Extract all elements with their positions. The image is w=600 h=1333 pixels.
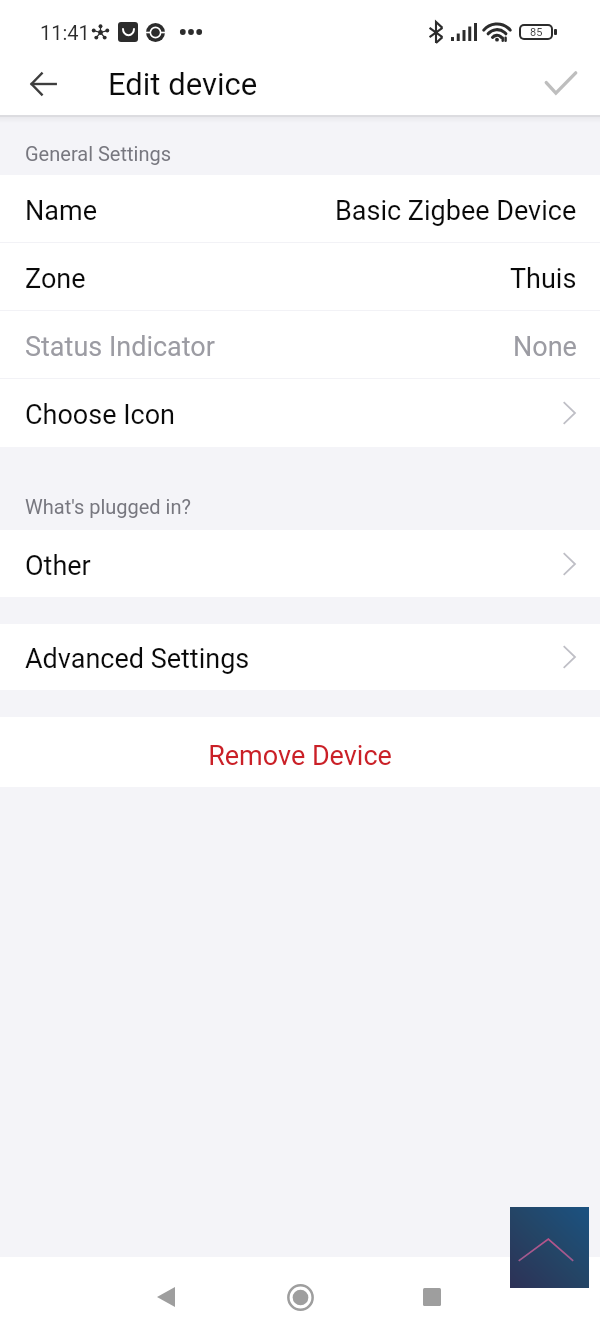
staticText: Remove Device: [208, 740, 392, 772]
staticText: What's plugged in?: [25, 495, 191, 518]
staticText: None: [513, 331, 577, 363]
staticText: 85: [530, 26, 543, 38]
button[interactable]: Other: [0, 530, 600, 597]
staticText: Other: [25, 550, 91, 582]
staticText: Status Indicator: [25, 331, 215, 363]
button[interactable]: Status Indicator: [0, 311, 600, 379]
staticText: Zone: [25, 263, 86, 295]
staticText: Edit device: [108, 66, 258, 102]
button[interactable]: Choose Icon: [0, 379, 600, 447]
staticText: Thuis: [510, 263, 577, 295]
staticText: 11:41: [40, 21, 90, 44]
button[interactable]: Remove Device: [0, 717, 600, 787]
button[interactable]: Recents: [382, 1257, 482, 1333]
button[interactable]: Back: [116, 1257, 216, 1333]
button[interactable]: Zone: [0, 243, 600, 311]
staticText: Name: [25, 195, 97, 227]
button[interactable]: Back: [0, 55, 86, 117]
button[interactable]: Save: [521, 55, 600, 117]
button[interactable]: Name: [0, 175, 600, 243]
button[interactable]: Advanced Settings: [0, 624, 600, 690]
button[interactable]: Open floating app: [510, 1207, 589, 1288]
staticText: Basic Zigbee Device: [335, 195, 577, 227]
staticText: General Settings: [25, 142, 171, 165]
button[interactable]: Home: [250, 1257, 350, 1333]
staticText: Choose Icon: [25, 399, 175, 431]
staticText: Advanced Settings: [25, 643, 250, 675]
